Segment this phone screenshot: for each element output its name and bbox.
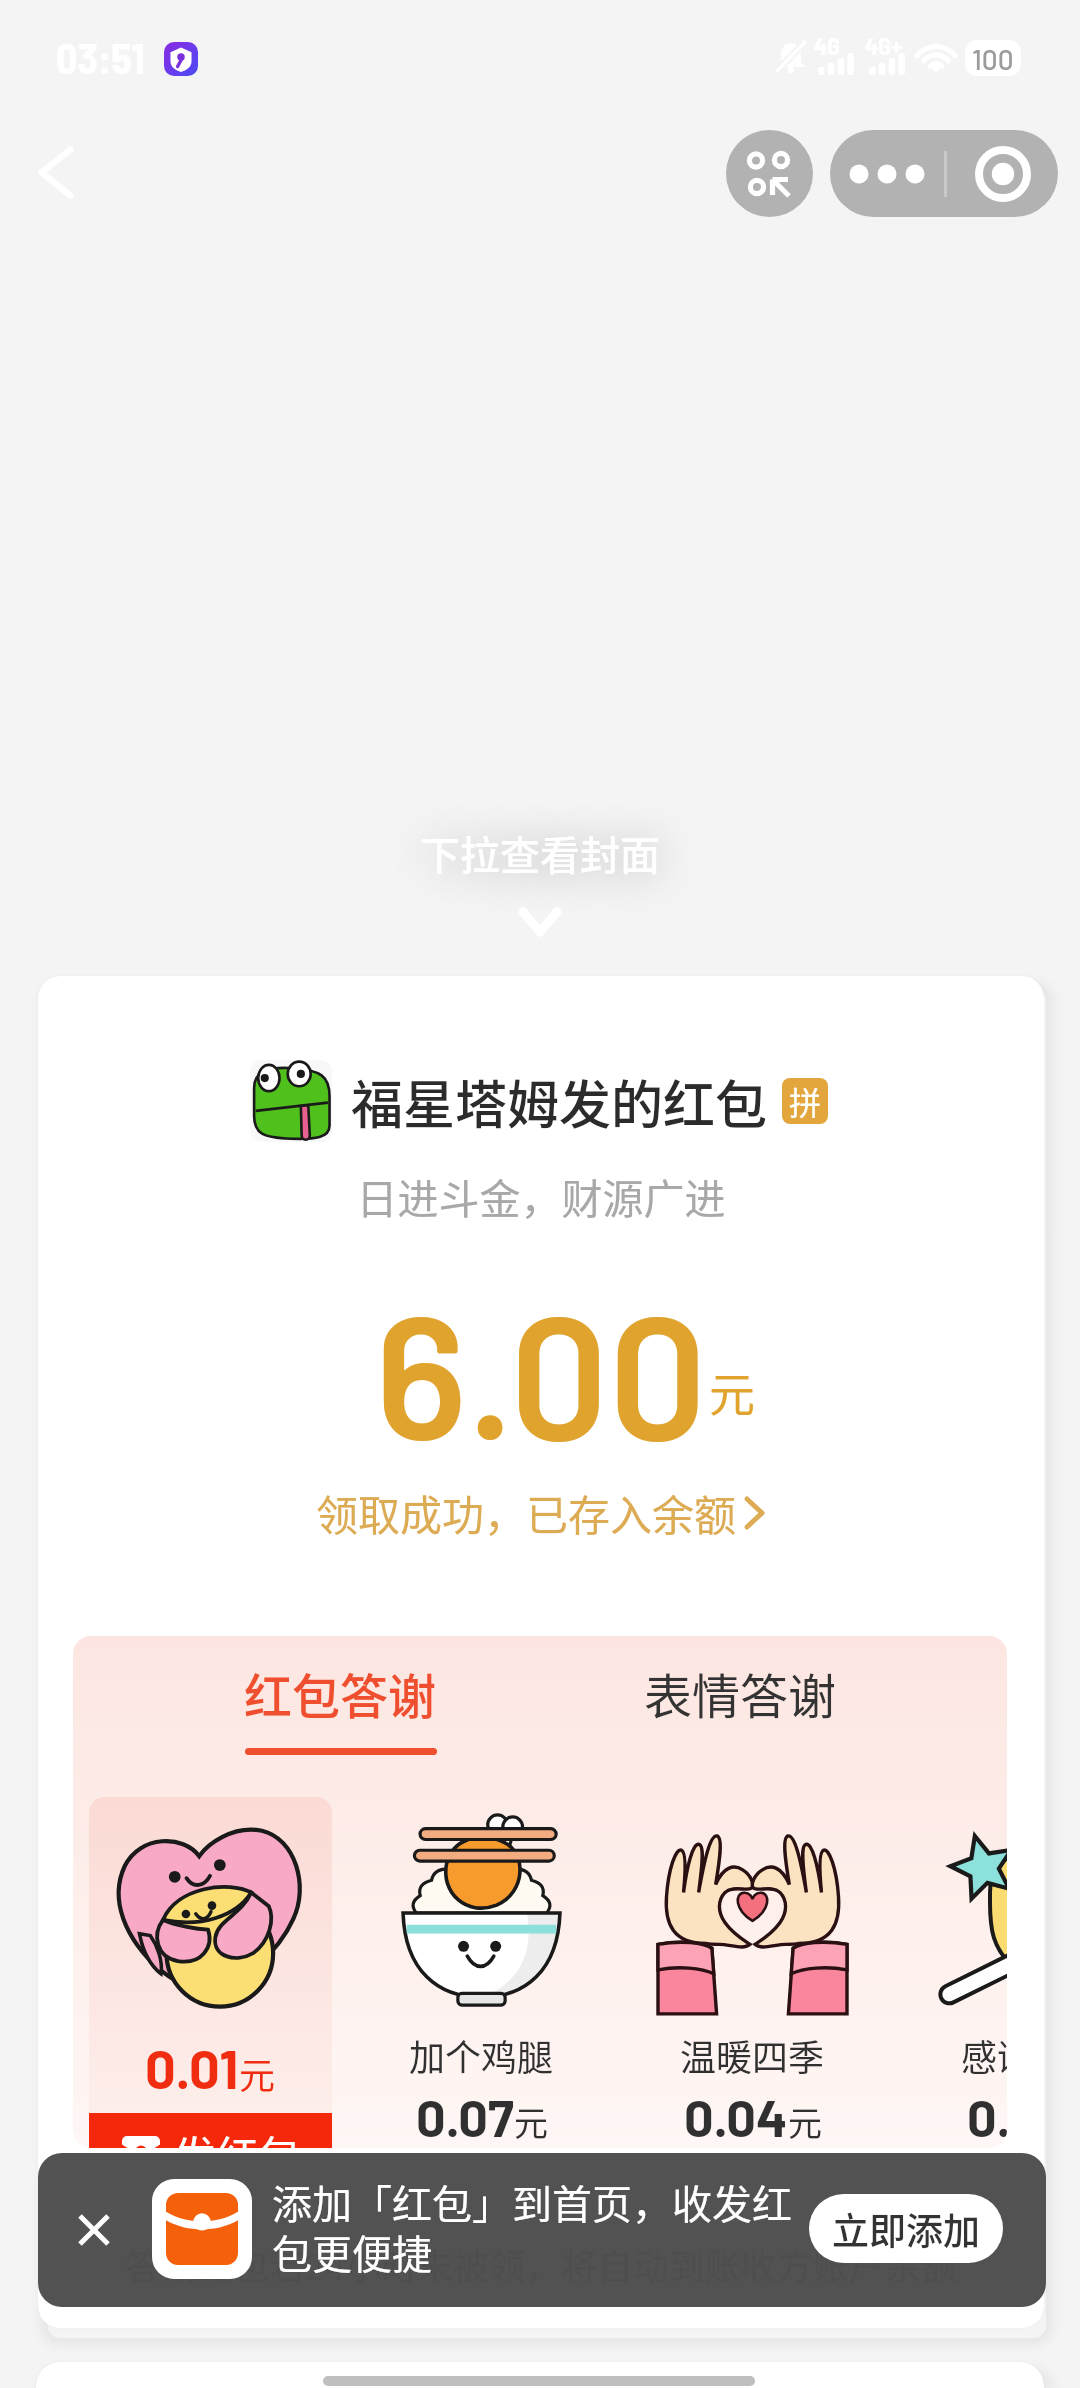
staticText: 元: [788, 2097, 822, 2146]
staticText: 03:51: [56, 32, 145, 82]
button[interactable]: 温暖四季: [658, 1814, 847, 2147]
staticText: 立即添加: [832, 2202, 980, 2256]
staticText: 发红包: [174, 2123, 301, 2148]
staticText: 添加「红包」到首页，收发红包更便捷: [272, 2173, 802, 2281]
staticText: 加个鸡腿: [409, 2029, 554, 2081]
staticText: 4G: [814, 31, 841, 60]
button[interactable]: 加个鸡腿: [387, 1814, 576, 2147]
staticText: 元: [709, 1358, 755, 1425]
staticText: 100: [972, 42, 1014, 76]
staticText: 0.05: [967, 2085, 1007, 2147]
staticText: 0.04: [684, 2085, 788, 2147]
staticText: 温暖四季: [680, 2029, 825, 2081]
button[interactable]: 领取成功，已存入余额: [316, 1482, 767, 1543]
staticText: 0.01: [145, 2035, 239, 2100]
staticText: 拼: [789, 1078, 822, 1124]
button[interactable]: Mini program list: [726, 130, 813, 217]
staticText: 6.00: [375, 1266, 708, 1475]
button[interactable]: Close banner: [59, 2195, 129, 2265]
staticText: 日进斗金，财源广进: [38, 1166, 1044, 1225]
staticText: 4G+: [865, 31, 903, 60]
button[interactable]: More options: [830, 130, 944, 217]
staticText: 福星塔姆发的红包: [351, 1064, 768, 1139]
staticText: 元: [514, 2097, 548, 2146]
button[interactable]: 表情答谢: [643, 1658, 837, 1776]
staticText: 元: [239, 2047, 276, 2099]
staticText: 表情答谢: [644, 1658, 837, 1728]
button[interactable]: 立即添加: [809, 2194, 1003, 2263]
staticText: 红包答谢: [244, 1658, 437, 1728]
staticText: 答谢红包若24小时未被领，将自动到账收方账户余额: [38, 2238, 1044, 2290]
staticText: 领取成功，已存入余额: [316, 1482, 737, 1543]
staticText: 感谢有你: [961, 2029, 1007, 2081]
button[interactable]: 发红包: [89, 2113, 332, 2148]
button[interactable]: 感谢有你: [939, 1814, 1007, 2147]
staticText: 0.07: [416, 2085, 514, 2147]
button[interactable]: 红包答谢: [243, 1658, 437, 1776]
button[interactable]: 0.01: [89, 1797, 332, 2148]
staticText: 下拉查看封面: [420, 824, 660, 882]
button[interactable]: Close mini program: [947, 130, 1058, 217]
